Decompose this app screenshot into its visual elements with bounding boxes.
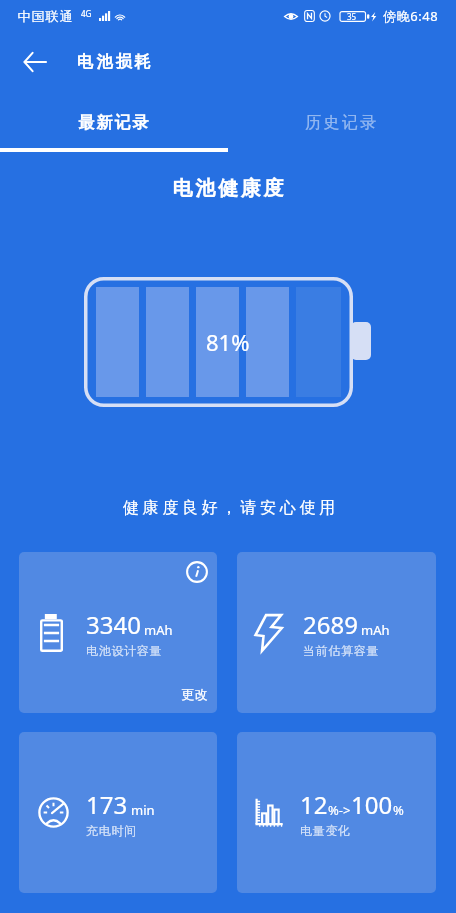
staticText: 35 [347,11,357,22]
button[interactable]: 更改 [181,686,208,702]
staticText: 2689 [303,608,358,641]
button[interactable]: 返回 [13,40,57,84]
staticText: 电池健康度 [171,176,285,201]
button[interactable]: 历史记录 [228,95,456,151]
staticText: mAh [144,621,173,639]
staticText: 中国联通 [17,8,73,24]
staticText: 4G [81,8,92,19]
button[interactable]: 12 [237,732,436,893]
staticText: 3340 [86,608,141,641]
staticText: 更改 [181,686,208,702]
button[interactable]: 2689 [237,552,436,713]
button[interactable]: 173 [19,732,217,893]
staticText: 健康度良好，请安心使用 [123,498,339,518]
staticText: 最新记录 [78,113,151,133]
staticText: 当前估算容量 [303,643,380,658]
button[interactable]: 最新记录 [0,95,228,151]
staticText: 电池设计容量 [86,643,163,658]
staticText: 电量变化 [300,823,351,838]
staticText: 电池损耗 [77,52,154,72]
staticText: 12 [300,788,328,821]
staticText: % [393,801,404,819]
staticText: 81% [206,327,250,357]
staticText: mAh [361,621,390,639]
staticText: 173 [86,788,128,821]
staticText: 历史记录 [305,113,379,133]
staticText: min [131,801,155,819]
staticText: %-> [328,801,351,819]
button[interactable]: 信息 [19,552,217,713]
staticText: 傍晚6:48 [383,7,439,25]
button[interactable]: 信息 [185,560,209,584]
staticText: 100 [351,788,393,821]
staticText: 充电时间 [86,823,137,838]
